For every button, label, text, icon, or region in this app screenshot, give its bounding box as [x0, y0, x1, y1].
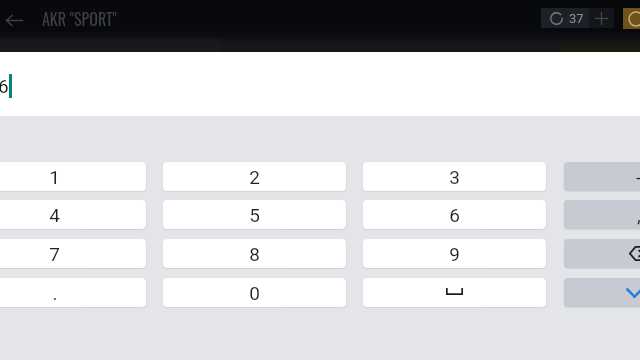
staticText: 8 [249, 243, 260, 265]
button[interactable]: 9 [363, 239, 546, 268]
button[interactable]: Backspace [564, 239, 640, 268]
staticText: AKR "SPORT" [42, 7, 117, 31]
button[interactable] [363, 278, 546, 307]
staticText: 4 [49, 204, 60, 226]
button[interactable]: 0 [163, 278, 346, 307]
staticText: 2 [249, 166, 260, 188]
staticText: - [636, 166, 640, 188]
staticText: 1 [49, 166, 60, 188]
staticText: 3 [449, 166, 460, 188]
staticText: 37 [569, 11, 584, 26]
staticText: 6 [449, 204, 460, 226]
button[interactable]: Back [0, 0, 30, 36]
button[interactable]: 2 [163, 162, 346, 191]
staticText: 0 [249, 282, 260, 304]
button[interactable]: Refresh [541, 8, 589, 28]
staticText: 9 [449, 243, 460, 265]
staticText: 7 [49, 243, 60, 265]
button[interactable]: 6 [363, 200, 546, 229]
button[interactable]: Enter [564, 278, 640, 307]
button[interactable]: 7 [0, 239, 146, 268]
button[interactable]: 1 [0, 162, 146, 191]
staticText: 6 [0, 75, 9, 97]
button[interactable]: 5 [163, 200, 346, 229]
button[interactable]: Minus [564, 162, 640, 191]
button[interactable]: Comma [564, 200, 640, 229]
button[interactable]: Account [623, 8, 640, 29]
button[interactable]: 8 [163, 239, 346, 268]
button[interactable]: 3 [363, 162, 546, 191]
staticText: 5 [249, 204, 260, 226]
button[interactable]: 4 [0, 200, 146, 229]
staticText: , [637, 204, 640, 226]
staticText: . [52, 282, 58, 304]
button[interactable]: . [0, 278, 146, 307]
button[interactable]: Add [589, 8, 614, 28]
